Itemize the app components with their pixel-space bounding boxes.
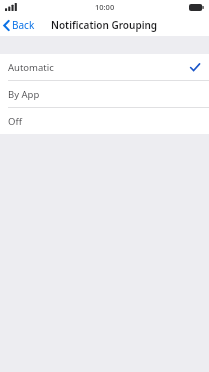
other: Selected — [190, 63, 200, 72]
staticText: Off — [8, 115, 22, 128]
button[interactable]: Off — [0, 108, 209, 134]
staticText: Back — [12, 18, 35, 32]
staticText: 10:00 — [95, 2, 115, 12]
button[interactable]: Automatic — [0, 54, 209, 81]
button[interactable]: By App — [0, 81, 209, 108]
staticText: By App — [8, 88, 40, 101]
button[interactable]: Back — [0, 15, 41, 35]
staticText: Notification Grouping — [51, 18, 158, 32]
staticText: Automatic — [8, 61, 54, 74]
